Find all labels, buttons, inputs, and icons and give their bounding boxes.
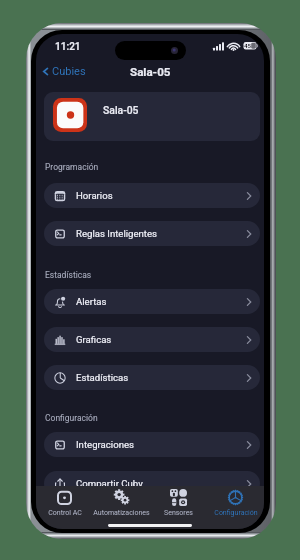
staticText: Alertas <box>76 296 245 307</box>
button[interactable]: Estadísticas <box>44 365 260 390</box>
staticText: Compartir Cuby <box>76 478 245 489</box>
staticText: Sensores <box>164 509 193 517</box>
staticText: Reglas Inteligentes <box>76 228 245 239</box>
button[interactable]: Sala-05 <box>44 92 260 141</box>
button[interactable]: Reglas Inteligentes <box>44 221 260 246</box>
button[interactable]: Sensores <box>150 486 207 529</box>
staticText: Control AC <box>48 509 82 517</box>
staticText: Cubies <box>52 65 86 78</box>
staticText: Estadísticas <box>76 372 245 383</box>
button[interactable]: Compartir Cuby <box>44 471 260 496</box>
button[interactable]: Cubies <box>40 62 86 80</box>
staticText: Estadísticas <box>45 270 92 280</box>
button[interactable]: Configuración <box>207 486 264 529</box>
button[interactable]: Integraciones <box>44 432 260 457</box>
staticText: 11:21 <box>55 41 81 53</box>
button[interactable]: Graficas <box>44 327 260 352</box>
staticText: Configuración <box>45 413 98 423</box>
staticText: Automatizaciones <box>93 509 150 517</box>
staticText: Integraciones <box>76 439 245 450</box>
button[interactable]: Horarios <box>44 183 260 208</box>
staticText: Programación <box>45 162 99 172</box>
staticText: 45 <box>244 42 252 49</box>
staticText: Horarios <box>76 190 245 201</box>
button[interactable]: Alertas <box>44 289 260 314</box>
button[interactable]: Automatizaciones <box>93 486 150 529</box>
staticText: Sala-05 <box>130 65 171 79</box>
staticText: Graficas <box>76 334 245 345</box>
button[interactable]: Control AC <box>36 486 93 529</box>
staticText: Sala-05 <box>103 104 139 116</box>
staticText: Configuración <box>214 509 258 517</box>
